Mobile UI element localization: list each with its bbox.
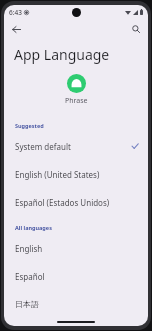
staticText: Español (Estados Unidos) [15,197,110,208]
staticText: All languages [15,224,52,231]
button[interactable]: Back [8,21,24,37]
button[interactable]: English [4,234,148,262]
button[interactable]: Search [128,21,144,37]
button[interactable]: Español [4,262,148,290]
staticText: App Language [14,45,110,64]
button[interactable]: English (United States) [4,160,148,188]
button[interactable]: Español (Estados Unidos) [4,188,148,216]
staticText: 日本語 [15,299,39,309]
staticText: English (United States) [15,169,100,180]
staticText: Suggested [15,122,44,129]
staticText: Español [15,271,45,282]
staticText: English [15,243,43,254]
staticText: 6:43 [9,8,22,17]
staticText: Phrase [65,96,88,106]
button[interactable]: System default [4,132,148,160]
button[interactable]: 日本語 [4,290,148,318]
staticText: System default [15,141,71,152]
